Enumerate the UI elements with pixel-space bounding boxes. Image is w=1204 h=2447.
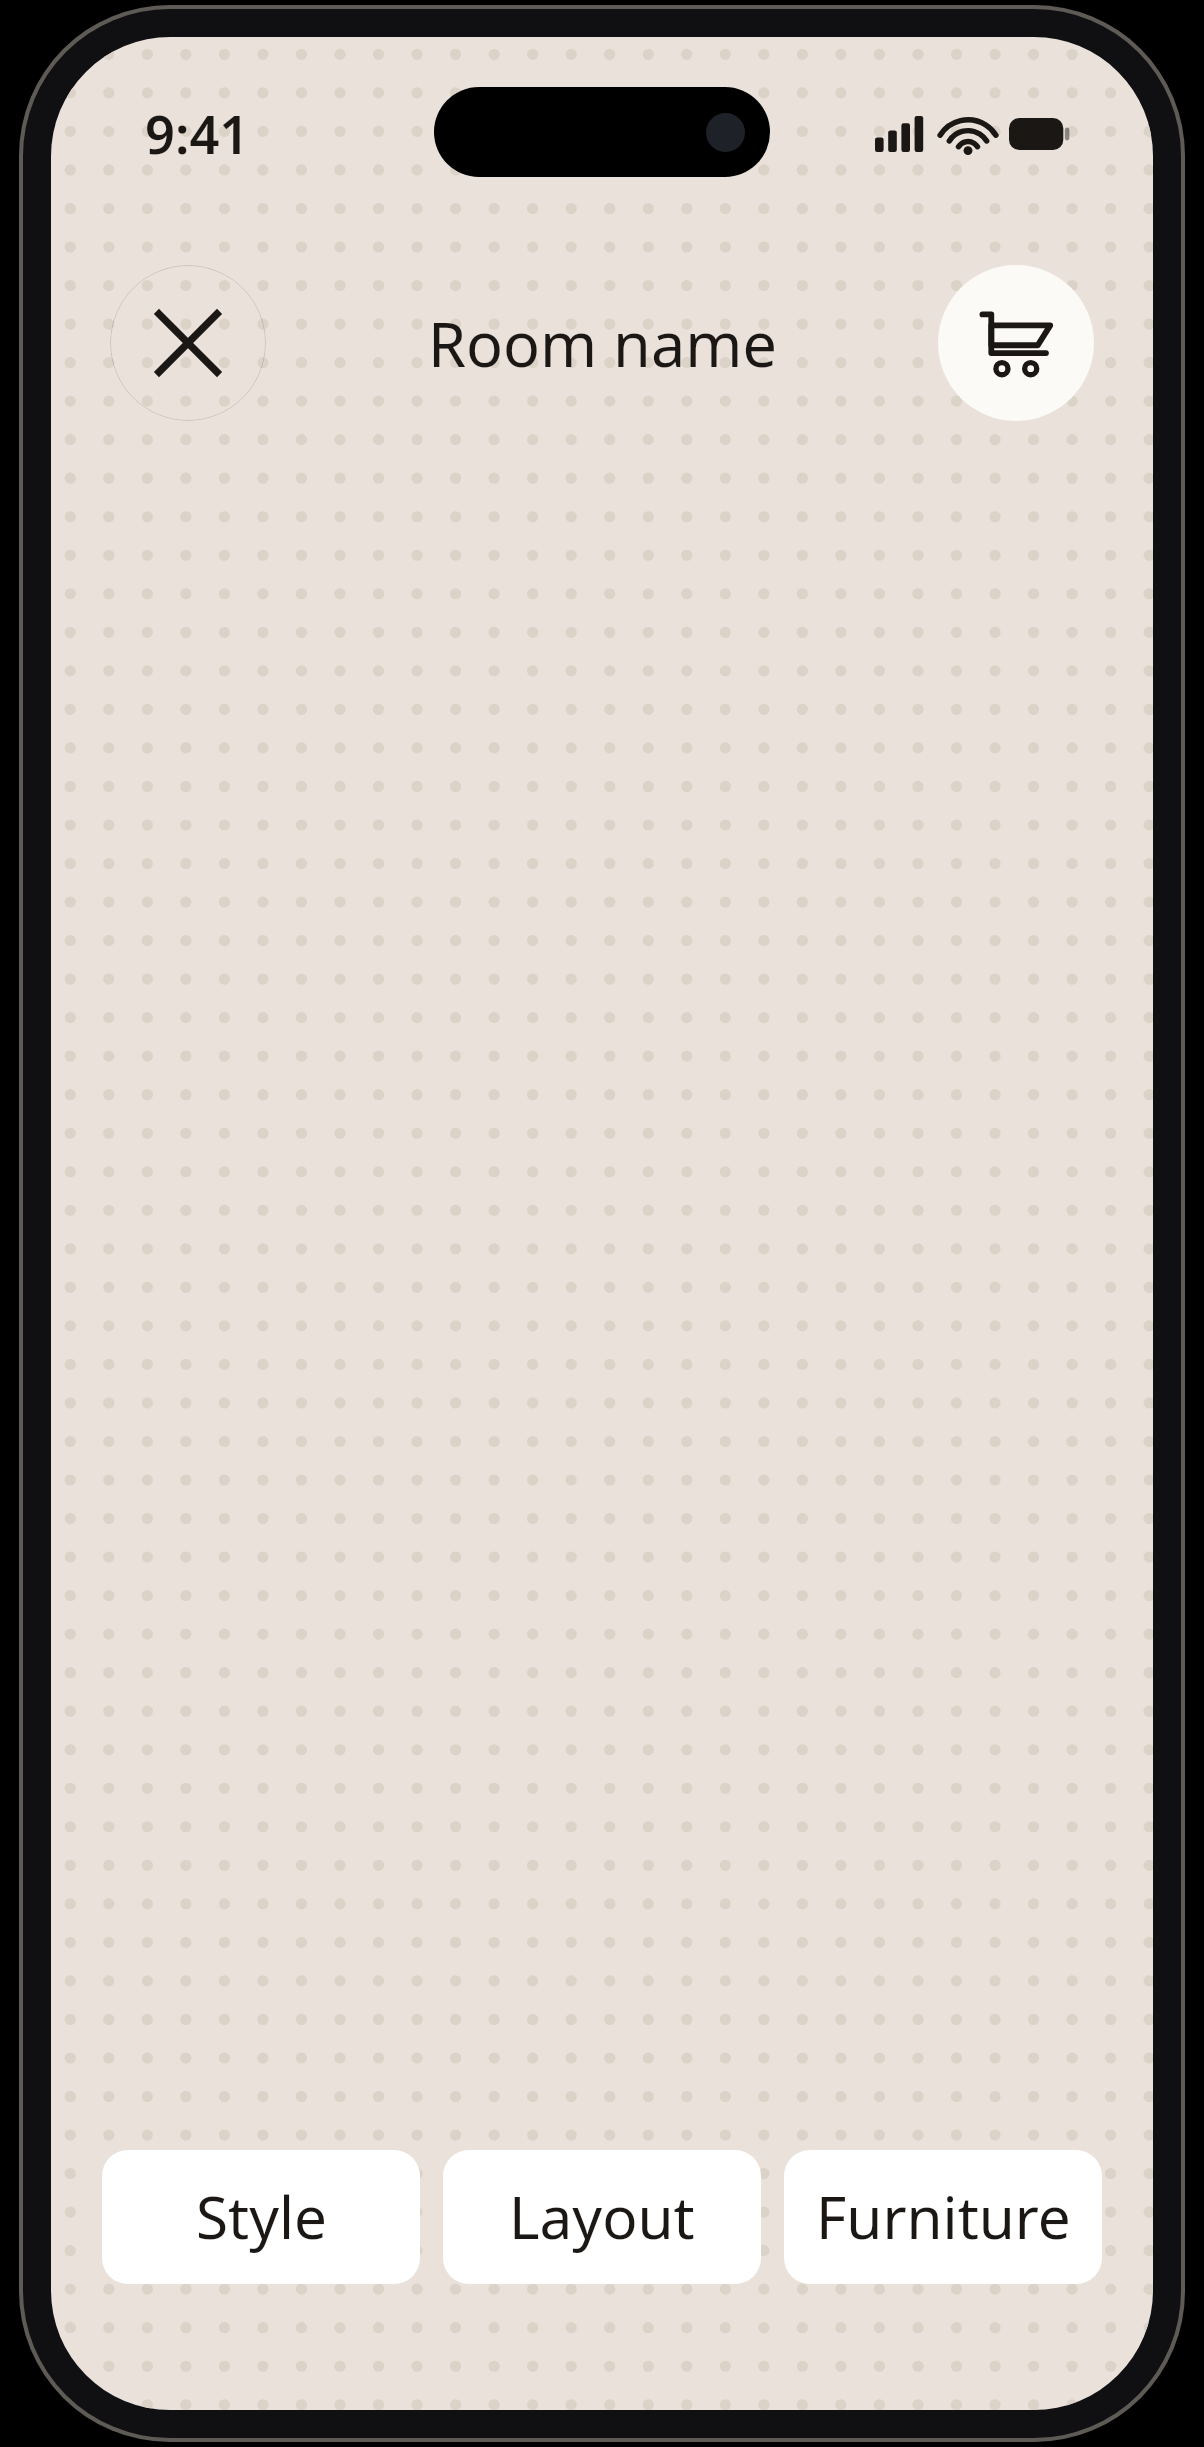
button[interactable]: Style bbox=[102, 2150, 420, 2284]
button[interactable]: Close bbox=[110, 265, 266, 421]
staticText: 9:41 bbox=[145, 98, 250, 169]
staticText: Layout bbox=[509, 2177, 695, 2257]
button[interactable]: Furniture bbox=[784, 2150, 1102, 2284]
staticText: Furniture bbox=[816, 2177, 1071, 2257]
button[interactable]: Layout bbox=[443, 2150, 761, 2284]
staticText: Style bbox=[196, 2177, 327, 2257]
staticText: Room name bbox=[428, 302, 777, 385]
button[interactable]: Cart bbox=[938, 265, 1094, 421]
